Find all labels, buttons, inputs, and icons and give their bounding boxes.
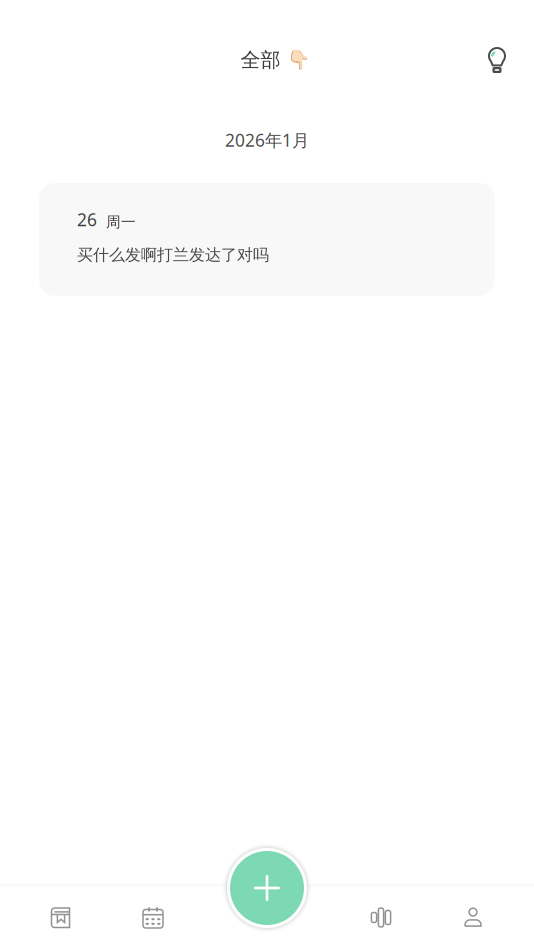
button[interactable]: Statistics: [335, 885, 427, 949]
button[interactable]: Calendar: [107, 885, 199, 949]
button[interactable]: Tips: [475, 38, 519, 82]
staticText: 买什么发啊打兰发达了对吗: [77, 245, 269, 265]
staticText: 全部: [240, 48, 280, 72]
staticText: 周一: [106, 213, 136, 231]
button[interactable]: 26: [39, 183, 495, 296]
button[interactable]: Notes: [15, 885, 107, 949]
button[interactable]: New note: [223, 844, 311, 932]
staticText: 2026年1月: [225, 128, 309, 151]
staticText: 👇🏻: [286, 49, 309, 71]
button[interactable]: Profile: [427, 885, 519, 949]
staticText: 26: [77, 208, 97, 231]
